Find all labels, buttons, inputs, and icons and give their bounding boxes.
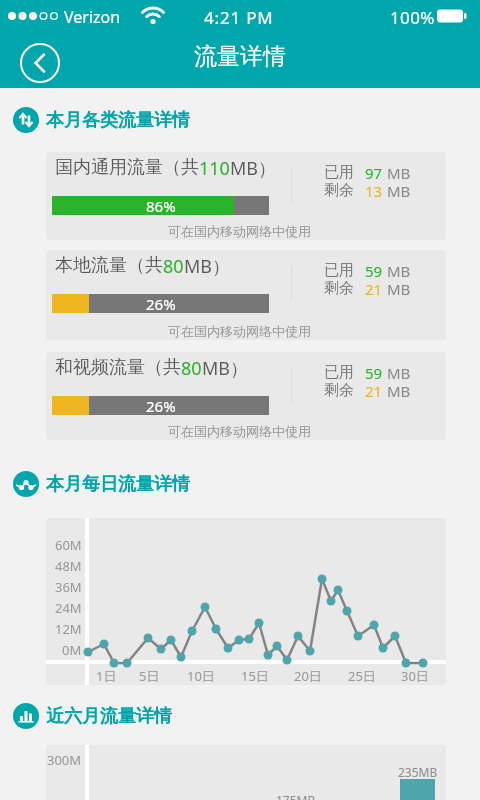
staticText: 97 — [365, 163, 383, 183]
staticText: 36M — [55, 578, 82, 596]
staticText: 80 — [181, 356, 202, 381]
staticText: 近六月流量详情 — [46, 705, 172, 728]
staticText: 60M — [55, 536, 82, 554]
staticText: 300M — [47, 751, 82, 769]
staticText: 剩余 — [324, 381, 354, 400]
button[interactable]: 本地流量（共 — [46, 250, 446, 340]
staticText: 4:21 PM — [204, 6, 274, 29]
staticText: 1日 — [96, 667, 117, 685]
button[interactable]: 本月各类流量详情 — [13, 107, 190, 133]
staticText: 10日 — [187, 667, 215, 685]
staticText: 本月各类流量详情 — [46, 109, 190, 132]
staticText: 本地流量（共 — [55, 254, 163, 277]
staticText: 24M — [55, 599, 82, 617]
button[interactable]: 近六月流量详情 — [13, 703, 172, 729]
staticText: 26% — [146, 294, 176, 313]
staticText: 国内通用流量（共 — [55, 156, 199, 179]
staticText: 59 — [365, 363, 383, 383]
staticText: 剩余 — [324, 181, 354, 200]
staticText: 100% — [390, 6, 435, 29]
staticText: 175MB — [276, 792, 316, 800]
staticText: 12M — [55, 620, 82, 638]
staticText: 20日 — [294, 667, 322, 685]
staticText: 13 — [365, 181, 383, 201]
button[interactable]: 和视频流量（共 — [46, 352, 446, 440]
staticText: Verizon — [64, 6, 121, 28]
staticText: MB） — [230, 156, 277, 181]
staticText: 本月每日流量详情 — [46, 473, 190, 496]
staticText: 和视频流量（共 — [55, 356, 181, 379]
staticText: 80 — [163, 254, 184, 279]
staticText: 48M — [55, 557, 82, 575]
staticText: MB — [387, 163, 411, 183]
button[interactable]: 国内通用流量（共 — [46, 152, 446, 240]
button[interactable] — [19, 42, 61, 84]
staticText: MB — [387, 363, 411, 383]
staticText: 21 — [365, 381, 383, 401]
staticText: 可在国内移动网络中使用 — [168, 223, 311, 239]
staticText: 剩余 — [324, 279, 354, 298]
staticText: 86% — [146, 196, 176, 215]
staticText: MB — [387, 261, 411, 281]
staticText: 5日 — [139, 667, 160, 685]
staticText: 0M — [62, 641, 82, 659]
staticText: 110 — [199, 156, 230, 181]
staticText: 25日 — [348, 667, 376, 685]
staticText: 可在国内移动网络中使用 — [168, 323, 311, 339]
staticText: 流量详情 — [194, 42, 286, 71]
staticText: 21 — [365, 279, 383, 299]
staticText: MB — [387, 381, 411, 401]
staticText: MB） — [202, 356, 249, 381]
staticText: 26% — [146, 396, 176, 415]
staticText: MB — [387, 279, 411, 299]
staticText: MB — [387, 181, 411, 201]
staticText: 已用 — [324, 363, 354, 382]
staticText: 已用 — [324, 163, 354, 182]
staticText: MB） — [184, 254, 231, 279]
staticText: 59 — [365, 261, 383, 281]
staticText: 15日 — [241, 667, 269, 685]
staticText: 235MB — [398, 764, 438, 780]
staticText: 已用 — [324, 261, 354, 280]
staticText: 可在国内移动网络中使用 — [168, 423, 311, 439]
button[interactable]: 本月每日流量详情 — [13, 471, 190, 497]
staticText: 30日 — [401, 667, 429, 685]
